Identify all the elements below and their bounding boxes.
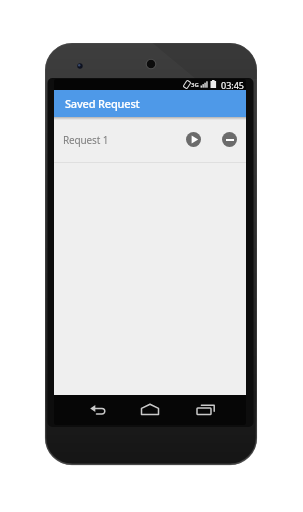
button[interactable] [186, 132, 201, 147]
button[interactable] [118, 395, 182, 425]
staticText: 03:45 [221, 79, 245, 90]
staticText: Request 1 [63, 133, 109, 147]
button[interactable] [54, 395, 118, 425]
button[interactable] [182, 395, 246, 425]
button[interactable] [222, 132, 237, 147]
staticText: 3G [191, 81, 199, 89]
button[interactable]: Request 1 [54, 117, 246, 162]
staticText: Saved Request [65, 96, 140, 111]
